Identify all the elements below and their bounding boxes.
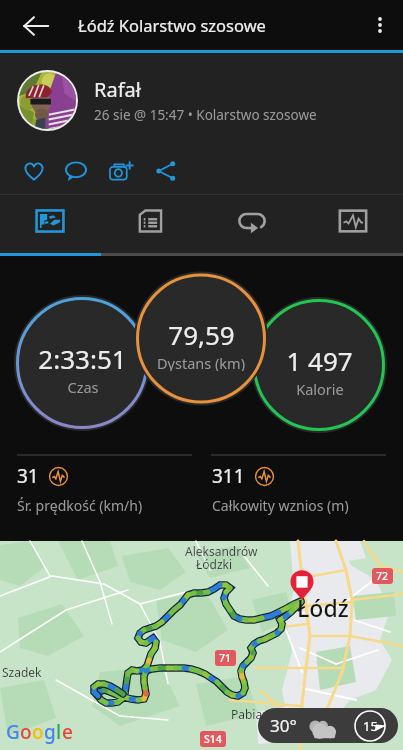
staticText: Rafał [94, 76, 141, 103]
staticText: 30° [270, 714, 297, 737]
staticText: Pabian [231, 706, 270, 722]
staticText: 79,59 [168, 317, 235, 352]
button[interactable]: Route map [0, 541, 403, 750]
staticText: 2:33:51 [38, 341, 127, 376]
button[interactable]: Notes tab [100, 195, 201, 256]
staticText: Aleksandrów [185, 543, 258, 559]
staticText: Szadek [2, 664, 42, 680]
staticText: Śr. prędkość (km/h) [17, 496, 143, 515]
staticText: S14 [204, 732, 222, 746]
button[interactable]: 31 [17, 463, 201, 515]
button[interactable]: Back [0, 2, 72, 49]
staticText: o [32, 719, 44, 745]
staticText: 26 sie @ 15:47 • Kolarstwo szosowe [94, 106, 317, 124]
button[interactable]: 79,59 [133, 317, 269, 371]
staticText: G [6, 719, 20, 745]
button[interactable]: 2:33:51 [14, 341, 150, 395]
staticText: 311 [212, 463, 245, 489]
button[interactable]: Add photo [104, 154, 138, 188]
staticText: g [44, 719, 56, 745]
staticText: o [20, 719, 32, 745]
staticText: Łódź Kolarstwo szosowe [78, 14, 266, 36]
button[interactable]: Share [149, 154, 183, 188]
staticText: l [56, 719, 62, 745]
staticText: Całkowity wznios (m) [212, 496, 349, 515]
button[interactable]: Comment [59, 154, 93, 188]
staticText: 15 [363, 717, 378, 735]
staticText: 1 497 [286, 343, 353, 378]
staticText: Łódź [297, 592, 349, 623]
button[interactable]: More options [357, 2, 403, 48]
button[interactable]: Like [17, 154, 51, 188]
staticText: 71 [219, 651, 232, 665]
button[interactable]: Laps tab [201, 195, 302, 256]
button[interactable]: 311 [212, 463, 403, 515]
button[interactable]: Weather [258, 708, 398, 743]
staticText: e [62, 719, 73, 745]
staticText: 72 [376, 569, 389, 583]
staticText: Kalorie [296, 379, 344, 397]
button[interactable]: Chart tab [302, 195, 403, 256]
button[interactable]: 1 497 [251, 343, 387, 397]
staticText: 31 [17, 463, 39, 489]
button[interactable]: Map tab [0, 195, 100, 256]
staticText: Dystans (km) [157, 353, 245, 371]
button[interactable]: Rafał [0, 53, 403, 147]
staticText: Czas [67, 377, 99, 395]
staticText: Łódzki [196, 556, 233, 572]
